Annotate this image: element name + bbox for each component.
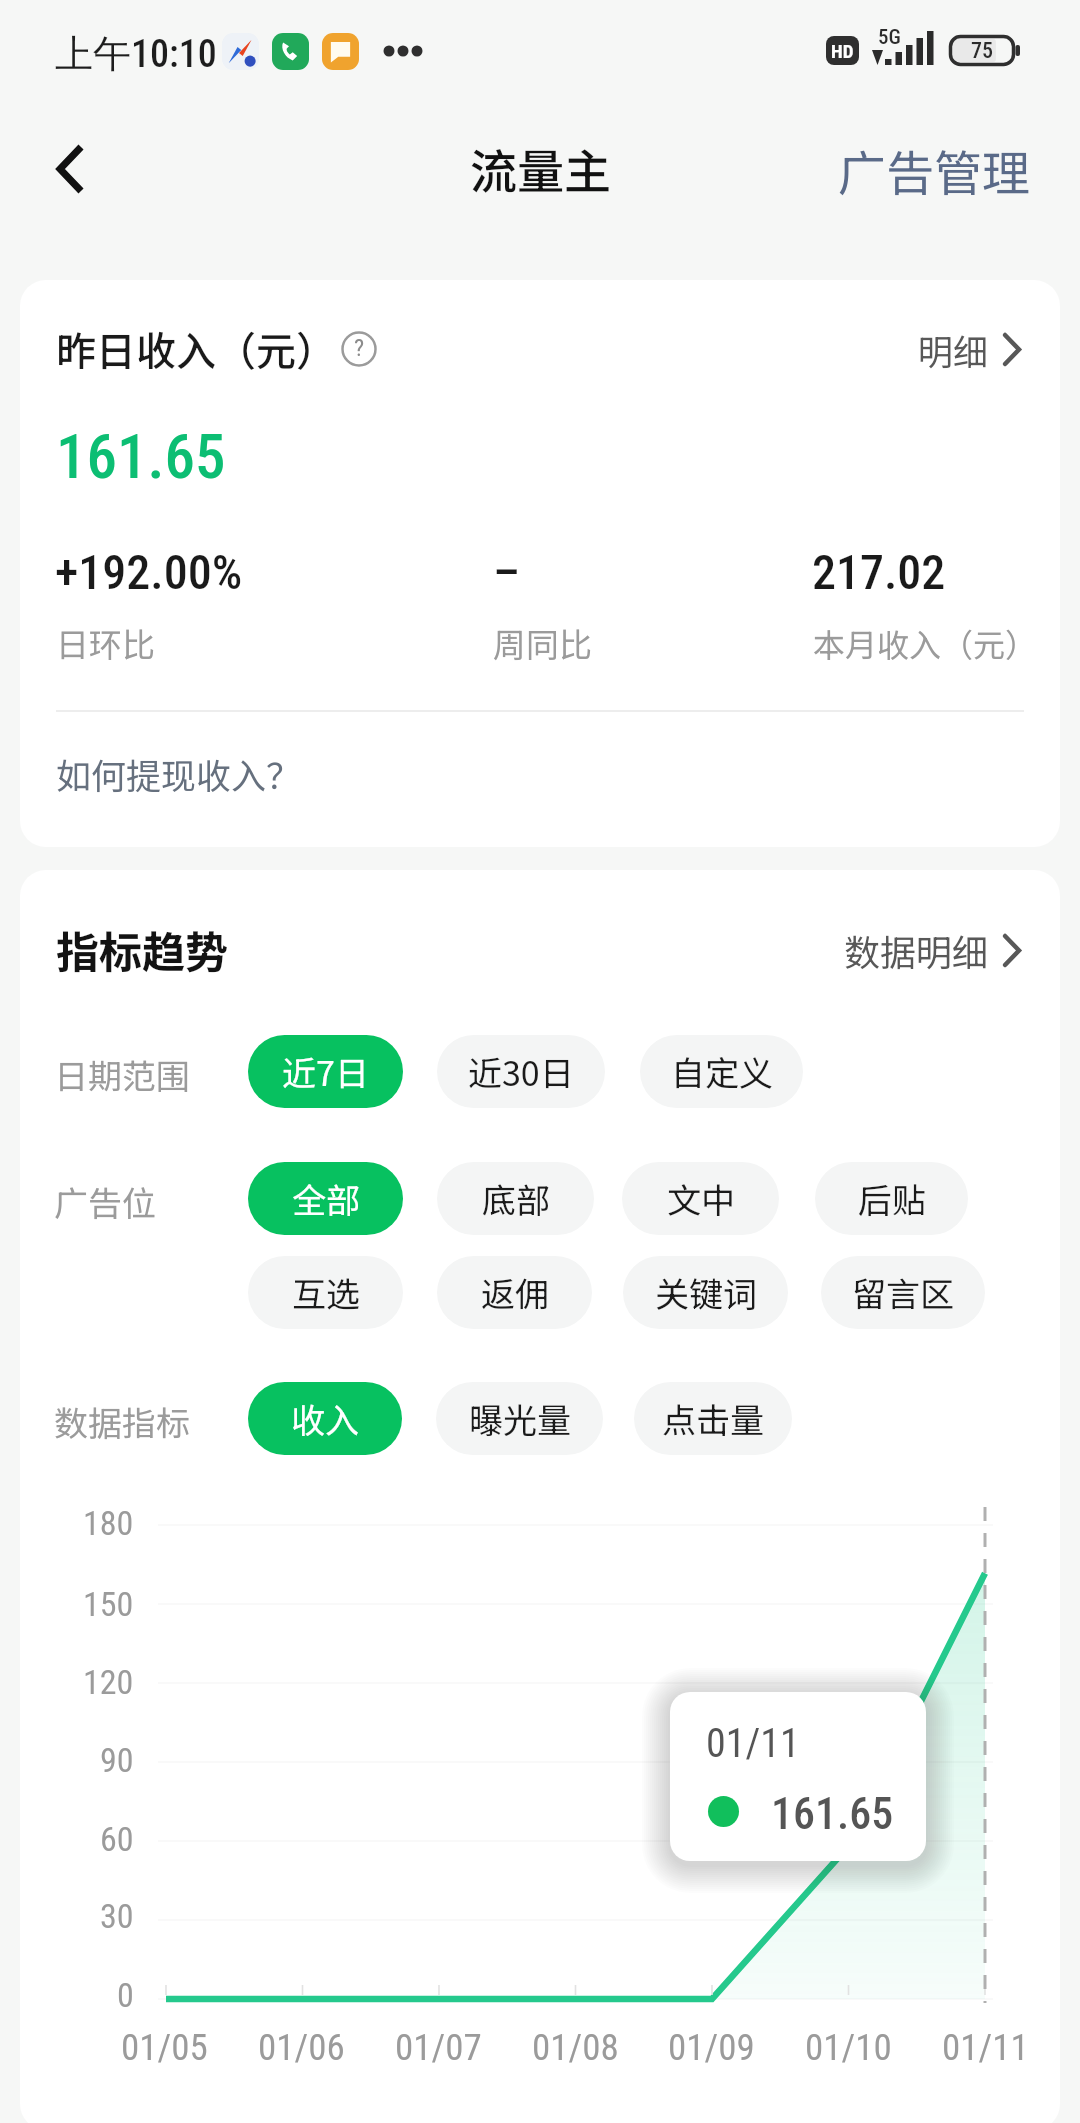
staticText: 180 xyxy=(83,1503,134,1543)
staticText: 明细 xyxy=(918,324,989,375)
staticText: 01/06 xyxy=(258,2026,345,2069)
staticText: HD xyxy=(831,40,854,62)
staticText: 留言区 xyxy=(852,1268,954,1317)
staticText: 161.65 xyxy=(56,421,226,492)
staticText: 日期范围 xyxy=(54,1050,190,1099)
staticText: 文中 xyxy=(667,1174,735,1223)
button[interactable]: 明细 xyxy=(800,318,1024,380)
staticText: 日环比 xyxy=(56,619,155,667)
staticText: 数据明细 xyxy=(844,924,989,976)
staticText: 广告管理 xyxy=(838,135,1031,205)
staticText: 近7日 xyxy=(282,1047,369,1096)
button[interactable]: 近30日 xyxy=(437,1035,605,1108)
button[interactable]: 底部 xyxy=(437,1162,594,1235)
button[interactable]: 后贴 xyxy=(815,1162,968,1235)
staticText: – xyxy=(493,544,520,600)
button[interactable]: 近7日 xyxy=(248,1035,403,1108)
staticText: 75 xyxy=(971,38,993,64)
button[interactable]: 如何提现收入？ xyxy=(56,748,302,799)
staticText: 150 xyxy=(83,1584,134,1624)
staticText: 01/10 xyxy=(805,2026,892,2069)
staticText: 自定义 xyxy=(671,1047,773,1096)
button[interactable]: 文中 xyxy=(622,1162,779,1235)
staticText: 如何提现收入？ xyxy=(56,748,302,799)
staticText: 数据指标 xyxy=(54,1397,190,1446)
staticText: 217.02 xyxy=(812,544,946,600)
staticText: 01/11 xyxy=(706,1720,800,1767)
staticText: 昨日收入（元） xyxy=(56,320,336,378)
staticText: 关键词 xyxy=(655,1268,757,1317)
staticText: 30 xyxy=(100,1896,134,1936)
staticText: 5G xyxy=(878,25,901,50)
button[interactable]: 互选 xyxy=(248,1256,403,1329)
staticText: 互选 xyxy=(292,1268,360,1317)
staticText: 广告位 xyxy=(54,1177,156,1226)
staticText: 指标趋势 xyxy=(56,918,228,980)
staticText: 161.65 xyxy=(771,1788,894,1840)
staticText: 返佣 xyxy=(481,1268,549,1317)
button[interactable]: 收入 xyxy=(248,1382,402,1455)
button[interactable]: 数据明细 xyxy=(780,920,1024,980)
staticText: 后贴 xyxy=(858,1174,926,1223)
button[interactable]: 自定义 xyxy=(640,1035,803,1108)
button[interactable]: 返佣 xyxy=(437,1256,592,1329)
button[interactable]: 曝光量 xyxy=(436,1382,603,1455)
staticText: 点击量 xyxy=(662,1394,764,1443)
staticText: 01/09 xyxy=(668,2026,755,2069)
staticText: 01/08 xyxy=(532,2026,619,2069)
button[interactable]: 点击量 xyxy=(634,1382,792,1455)
button[interactable]: 广告管理 xyxy=(827,128,1042,212)
button[interactable]: 关键词 xyxy=(623,1256,788,1329)
staticText: 0 xyxy=(117,1975,134,2015)
staticText: 曝光量 xyxy=(469,1394,571,1443)
staticText: 120 xyxy=(83,1662,134,1702)
staticText: 本月收入（元） xyxy=(813,620,1038,666)
staticText: 全部 xyxy=(292,1174,360,1223)
staticText: 60 xyxy=(100,1819,134,1859)
button[interactable]: 留言区 xyxy=(821,1256,985,1329)
staticText: 周同比 xyxy=(493,619,592,667)
button[interactable]: Back xyxy=(25,124,115,214)
staticText: 90 xyxy=(100,1740,134,1780)
staticText: ? xyxy=(354,334,365,362)
staticText: +192.00% xyxy=(55,544,243,600)
staticText: 流量主 xyxy=(470,134,611,202)
staticText: 收入 xyxy=(291,1394,359,1443)
staticText: 01/05 xyxy=(121,2026,208,2069)
staticText: 01/11 xyxy=(942,2026,1029,2069)
staticText: 01/07 xyxy=(395,2026,482,2069)
staticText: 底部 xyxy=(482,1174,550,1223)
button[interactable]: 全部 xyxy=(248,1162,403,1235)
staticText: 近30日 xyxy=(468,1047,574,1096)
staticText: 上午10:10 xyxy=(55,30,217,78)
